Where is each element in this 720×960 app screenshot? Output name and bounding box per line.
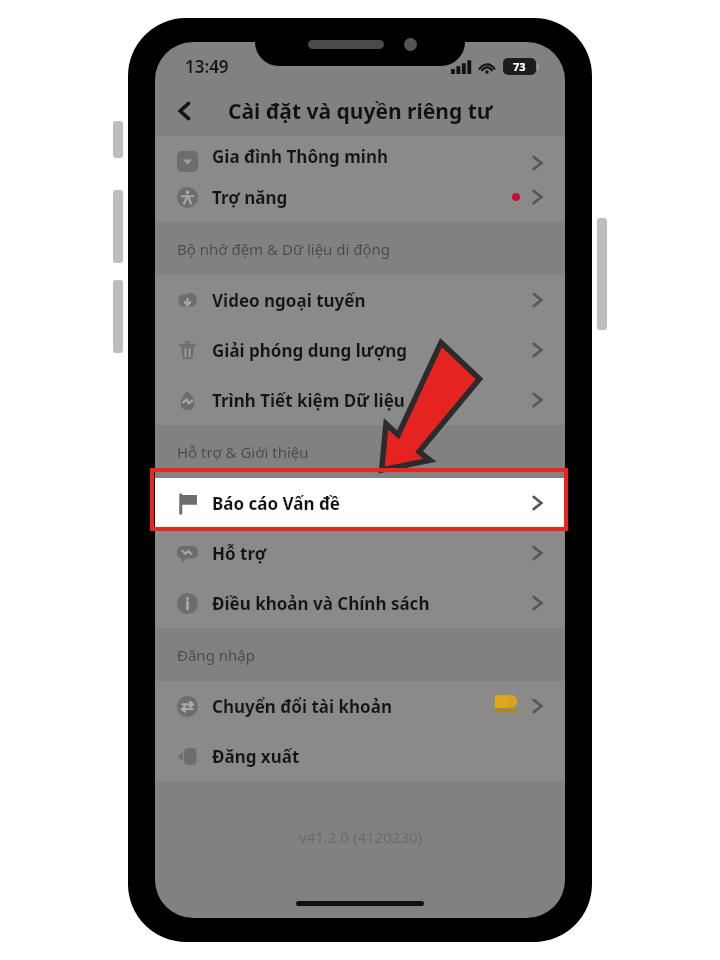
button[interactable]: Chuyển đổi tài khoản — [155, 681, 565, 731]
staticText: Báo cáo Vấn đề — [212, 492, 341, 515]
button[interactable]: Gia đình Thông minh — [155, 136, 565, 172]
staticText: Đăng xuất — [212, 745, 300, 768]
button[interactable]: Đăng xuất — [155, 731, 565, 781]
staticText: Gia đình Thông minh — [212, 145, 389, 168]
button[interactable]: Hỗ trợ — [155, 528, 565, 578]
staticText: Chuyển đổi tài khoản — [212, 695, 392, 718]
staticText: v41.2.0 (4120230) — [299, 827, 422, 847]
staticText: Video ngoại tuyến — [212, 289, 366, 312]
staticText: Trợ năng — [212, 186, 288, 209]
button[interactable]: Trợ năng — [155, 172, 565, 222]
staticText: 13:49 — [185, 55, 229, 78]
staticText: Điều khoản và Chính sách — [212, 592, 430, 615]
button[interactable]: Báo cáo Vấn đề — [155, 478, 565, 528]
staticText: Hỗ trợ & Giới thiệu — [177, 442, 309, 462]
button[interactable]: Video ngoại tuyến — [155, 275, 565, 325]
staticText: Trình Tiết kiệm Dữ liệu — [212, 389, 405, 412]
button[interactable]: Giải phóng dung lượng — [155, 325, 565, 375]
button[interactable]: Back — [163, 89, 207, 133]
staticText: Hỗ trợ — [212, 542, 267, 565]
staticText: Đăng nhập — [177, 645, 255, 665]
staticText: Cài đặt và quyền riêng tư — [228, 97, 493, 126]
staticText: Giải phóng dung lượng — [212, 339, 408, 362]
staticText: Bộ nhớ đệm & Dữ liệu di động — [177, 239, 391, 259]
button[interactable]: Trình Tiết kiệm Dữ liệu — [155, 375, 565, 425]
staticText: 73 — [513, 59, 526, 74]
button[interactable]: Điều khoản và Chính sách — [155, 578, 565, 628]
